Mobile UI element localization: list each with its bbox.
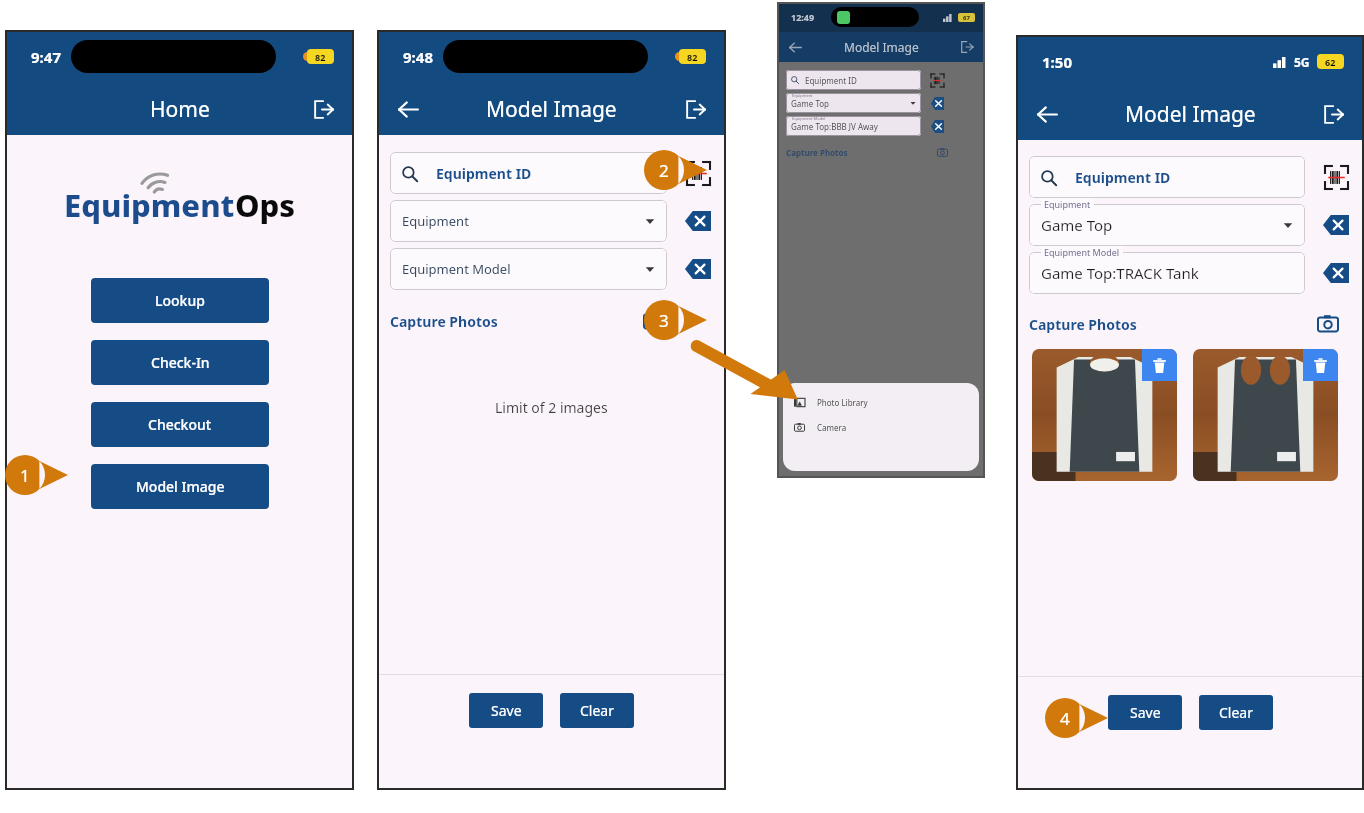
button[interactable]: Clear <box>560 693 634 728</box>
staticText: Model Image <box>486 95 617 124</box>
staticText: 82 <box>687 51 698 63</box>
staticText: 3 <box>659 309 669 332</box>
staticText: Game Top:TRACK Tank <box>1041 263 1199 283</box>
button[interactable]: Checkout <box>91 402 269 447</box>
button[interactable]: Delete photo <box>1142 349 1177 381</box>
staticText: 67 <box>963 14 970 22</box>
button[interactable]: Check-In <box>91 340 269 385</box>
staticText: 1 <box>20 464 30 487</box>
button[interactable]: Log out <box>1318 99 1348 129</box>
staticText: 5G <box>1294 54 1310 70</box>
staticText: Capture Photos <box>390 312 498 331</box>
button[interactable]: Equipment ID <box>1029 156 1305 198</box>
button[interactable]: Game Top <box>1029 204 1305 246</box>
staticText: Equipment Model <box>792 116 826 121</box>
button[interactable]: Delete photo <box>1032 349 1177 481</box>
staticText: Equipment ID <box>1075 168 1171 187</box>
staticText: Model Image <box>844 39 919 55</box>
button[interactable]: Scan barcode <box>1321 162 1351 192</box>
button[interactable]: Equipment Model <box>390 248 667 290</box>
staticText: Check-In <box>151 353 210 372</box>
button[interactable]: Game Top:TRACK Tank <box>1029 252 1305 294</box>
staticText: Camera <box>817 422 847 433</box>
button[interactable]: Clear <box>930 96 944 110</box>
button[interactable]: Log out <box>680 94 710 124</box>
button[interactable]: Delete photo <box>1193 349 1338 481</box>
button[interactable]: Clear <box>1321 258 1351 288</box>
staticText: Equipment Model <box>402 260 511 278</box>
staticText: Home <box>150 95 210 124</box>
staticText: Capture Photos <box>786 147 848 158</box>
button[interactable]: Camera <box>639 306 669 336</box>
button[interactable]: Back <box>393 94 423 124</box>
button[interactable]: Camera <box>1313 309 1343 339</box>
staticText: Save <box>1130 703 1161 722</box>
button[interactable]: Clear <box>1321 210 1351 240</box>
staticText: Equipment Model <box>1044 246 1120 258</box>
button[interactable]: Lookup <box>91 278 269 323</box>
button[interactable]: Clear <box>1199 695 1273 730</box>
staticText: 62 <box>1325 56 1336 68</box>
staticText: 4 <box>1060 707 1070 730</box>
button[interactable]: Camera <box>794 422 979 433</box>
staticText: 82 <box>315 51 326 63</box>
staticText: Clear <box>1219 703 1253 722</box>
button[interactable]: Clear <box>683 206 713 236</box>
button[interactable]: Equipment ID <box>390 152 667 194</box>
button[interactable]: Photo Library <box>794 397 979 408</box>
button[interactable]: Scan barcode <box>930 73 944 87</box>
button[interactable]: Save <box>1108 695 1182 730</box>
staticText: Lookup <box>155 291 205 310</box>
button[interactable]: Equipment <box>390 200 667 242</box>
button[interactable]: Save <box>469 693 543 728</box>
staticText: Game Top:BBB JV Away <box>791 121 878 132</box>
staticText: Equipment <box>792 93 813 98</box>
staticText: Capture Photos <box>1029 315 1137 334</box>
staticText: Equipment <box>64 184 235 226</box>
staticText: Equipment ID <box>436 164 532 183</box>
staticText: Limit of 2 images <box>495 398 608 417</box>
staticText: Game Top <box>791 98 830 109</box>
staticText: Equipment <box>1044 198 1091 210</box>
staticText: 12:49 <box>791 11 815 23</box>
button[interactable]: Equipment Model <box>786 116 921 136</box>
button[interactable]: Equipment <box>786 93 921 113</box>
button[interactable]: Model Image <box>91 464 269 509</box>
staticText: Model Image <box>136 477 225 496</box>
staticText: Photo Library <box>817 397 868 408</box>
staticText: Checkout <box>148 415 212 434</box>
staticText: 9:47 <box>31 47 61 67</box>
button[interactable]: Clear <box>930 119 944 133</box>
staticText: 2 <box>659 159 669 182</box>
staticText: Equipment ID <box>805 75 857 86</box>
staticText: Save <box>491 701 522 720</box>
staticText: 9:48 <box>403 47 433 67</box>
button[interactable]: Scan barcode <box>683 158 713 188</box>
staticText: Model Image <box>1125 100 1256 129</box>
button[interactable]: Back <box>1032 99 1062 129</box>
staticText: 1:50 <box>1042 52 1072 72</box>
staticText: Clear <box>580 701 614 720</box>
button[interactable]: Clear <box>683 254 713 284</box>
button[interactable]: Equipment ID <box>786 70 921 90</box>
button[interactable]: Delete photo <box>1303 349 1338 381</box>
staticText: Game Top <box>1041 215 1113 235</box>
button[interactable]: Log out <box>308 94 338 124</box>
staticText: Equipment <box>402 212 469 230</box>
staticText: Ops <box>235 184 296 226</box>
